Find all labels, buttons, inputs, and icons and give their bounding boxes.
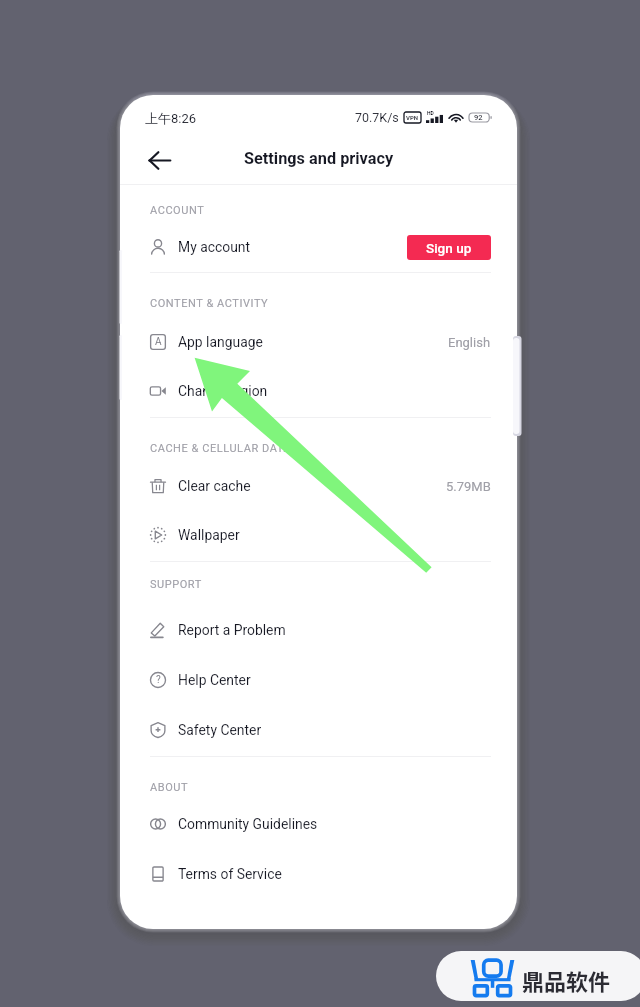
staticText: CONTENT & ACTIVITY [150, 297, 269, 310]
staticText: English [448, 335, 491, 350]
staticText: HD [427, 110, 434, 116]
button[interactable]: ? [120, 655, 517, 705]
button[interactable]: Safety Center [120, 705, 517, 755]
staticText: Report a Problem [178, 622, 286, 638]
staticText: Clear cache [178, 478, 251, 494]
button[interactable]: Sign up [407, 235, 491, 260]
staticText: Help Center [178, 672, 251, 688]
button[interactable]: Wallpaper [120, 510, 517, 560]
button[interactable]: Community Guidelines [120, 799, 517, 849]
staticText: Safety Center [178, 722, 262, 738]
staticText: 上午8:26 [145, 110, 197, 126]
staticText: 5.79MB [446, 479, 491, 494]
staticText: App language [178, 334, 263, 350]
staticText: CACHE & CELLULAR DATA [150, 442, 292, 455]
staticText: Terms of Service [178, 866, 282, 882]
staticText: 鼎品软件 [522, 964, 611, 996]
staticText: Change region [178, 383, 268, 399]
button[interactable]: A [120, 317, 517, 367]
staticText: My account [178, 239, 251, 255]
button[interactable]: Clear cache [120, 461, 517, 511]
staticText: ? [156, 674, 161, 686]
staticText: ACCOUNT [150, 204, 205, 217]
staticText: ABOUT [150, 781, 189, 794]
button[interactable]: Change region [120, 366, 517, 416]
staticText: A [155, 336, 162, 348]
staticText: 92 [474, 113, 483, 122]
staticText: VPN [406, 114, 419, 121]
staticText: SUPPORT [150, 578, 202, 591]
button[interactable]: My account [120, 222, 517, 272]
staticText: Sign up [426, 240, 472, 256]
staticText: Settings and privacy [244, 149, 394, 168]
staticText: 70.7K/s [355, 110, 399, 125]
staticText: Community Guidelines [178, 816, 318, 832]
button[interactable]: Back [138, 139, 180, 181]
button[interactable]: Report a Problem [120, 605, 517, 655]
staticText: Wallpaper [178, 527, 240, 543]
button[interactable]: Terms of Service [120, 849, 517, 899]
